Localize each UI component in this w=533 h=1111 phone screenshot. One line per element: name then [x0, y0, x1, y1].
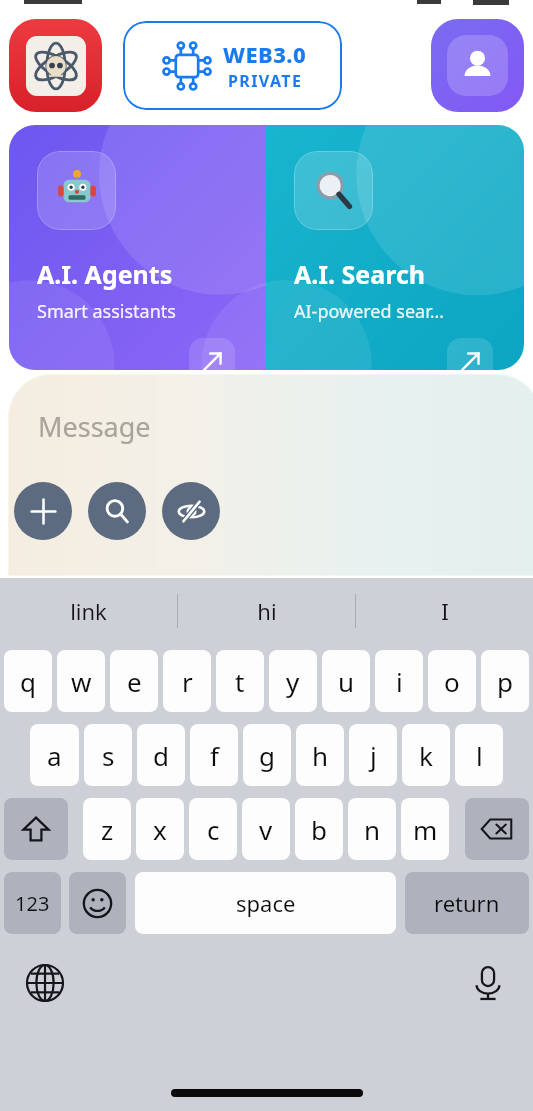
staticText: u [338, 664, 355, 699]
staticText: z [101, 812, 114, 847]
staticText: h [312, 738, 329, 773]
staticText: f [210, 738, 219, 773]
staticText: y [286, 664, 300, 699]
button[interactable]: v [242, 798, 290, 860]
staticText: x [153, 812, 167, 847]
staticText: A.I. Search [294, 257, 426, 291]
staticText: d [153, 738, 169, 773]
button[interactable]: I [356, 578, 533, 644]
staticText: r [182, 664, 193, 699]
button[interactable]: return [405, 872, 529, 934]
button[interactable]: h [296, 724, 344, 786]
button[interactable]: l [455, 724, 503, 786]
staticText: Smart assistants [37, 299, 176, 324]
button[interactable]: hi [178, 578, 355, 644]
staticText: v [259, 812, 273, 847]
button[interactable]: w [57, 650, 105, 712]
button[interactable]: p [481, 650, 529, 712]
button[interactable]: f [190, 724, 238, 786]
button[interactable]: space [135, 872, 396, 934]
button[interactable]: Open A.I. Agents [189, 338, 235, 370]
staticText: hi [257, 596, 277, 626]
staticText: s [102, 738, 115, 773]
button[interactable]: b [295, 798, 343, 860]
staticText: o [444, 664, 460, 699]
button[interactable]: Dictation [461, 956, 515, 1010]
staticText: i [396, 664, 403, 699]
button[interactable]: s [84, 724, 132, 786]
button[interactable]: A.I. Agents [9, 125, 266, 370]
button[interactable]: y [269, 650, 317, 712]
button[interactable]: q [4, 650, 52, 712]
staticText: m [413, 812, 438, 847]
staticText: g [259, 738, 275, 773]
button[interactable]: Change language [18, 956, 72, 1010]
staticText: e [127, 664, 142, 699]
button[interactable]: d [137, 724, 185, 786]
button[interactable]: g [243, 724, 291, 786]
staticText: AI-powered sear… [294, 299, 444, 324]
staticText: space [236, 888, 296, 918]
button[interactable]: Emoji [69, 872, 126, 934]
staticText: a [47, 738, 62, 773]
staticText: A.I. Agents [37, 257, 173, 291]
button[interactable]: c [189, 798, 237, 860]
button[interactable]: Hide [162, 482, 220, 540]
button[interactable]: u [322, 650, 370, 712]
button[interactable]: A.I. Search [266, 125, 524, 370]
button[interactable]: r [163, 650, 211, 712]
staticText: k [419, 738, 433, 773]
button[interactable]: m [401, 798, 449, 860]
button[interactable]: o [428, 650, 476, 712]
staticText: return [434, 888, 500, 918]
button[interactable]: a [30, 724, 79, 786]
staticText: t [235, 664, 245, 699]
button[interactable]: e [110, 650, 158, 712]
staticText: p [497, 664, 513, 699]
button[interactable]: j [349, 724, 397, 786]
button[interactable]: Profile [431, 19, 524, 112]
button[interactable]: z [83, 798, 131, 860]
staticText: b [311, 812, 327, 847]
button[interactable]: n [348, 798, 396, 860]
staticText: PRIVATE [228, 70, 303, 92]
button[interactable]: Shift [4, 798, 68, 860]
staticText: l [476, 738, 483, 773]
staticText: n [364, 812, 381, 847]
button[interactable]: link [0, 578, 177, 644]
button[interactable]: WEB3.0 [123, 21, 342, 110]
staticText: j [370, 738, 377, 773]
button[interactable]: i [375, 650, 423, 712]
button[interactable]: Open A.I. Search [447, 338, 493, 370]
button[interactable]: Open app [9, 19, 102, 112]
button[interactable]: Search [88, 482, 146, 540]
button[interactable]: k [402, 724, 450, 786]
staticText: I [441, 596, 449, 626]
button[interactable]: Backspace [465, 798, 529, 860]
staticText: link [70, 596, 107, 626]
staticText: c [207, 812, 220, 847]
staticText: 123 [15, 890, 50, 917]
button[interactable]: t [216, 650, 264, 712]
staticText: Message [38, 408, 151, 445]
button[interactable]: 123 [4, 872, 61, 934]
staticText: WEB3.0 [223, 39, 307, 69]
button[interactable]: x [136, 798, 184, 860]
button[interactable]: Add [14, 482, 72, 540]
staticText: w [71, 664, 92, 699]
staticText: q [20, 664, 36, 699]
